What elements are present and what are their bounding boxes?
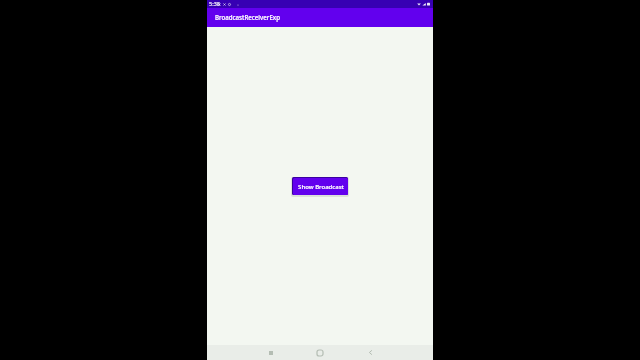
button[interactable]: Back [363,345,378,360]
staticText: 5:38 [209,0,220,7]
button[interactable]: Recents [263,345,278,360]
staticText: Show Broadcast [298,183,344,191]
button[interactable]: Show Broadcast [293,178,348,195]
staticText: BroadcastReceiverExp [215,13,280,21]
button[interactable]: Home [312,345,327,360]
